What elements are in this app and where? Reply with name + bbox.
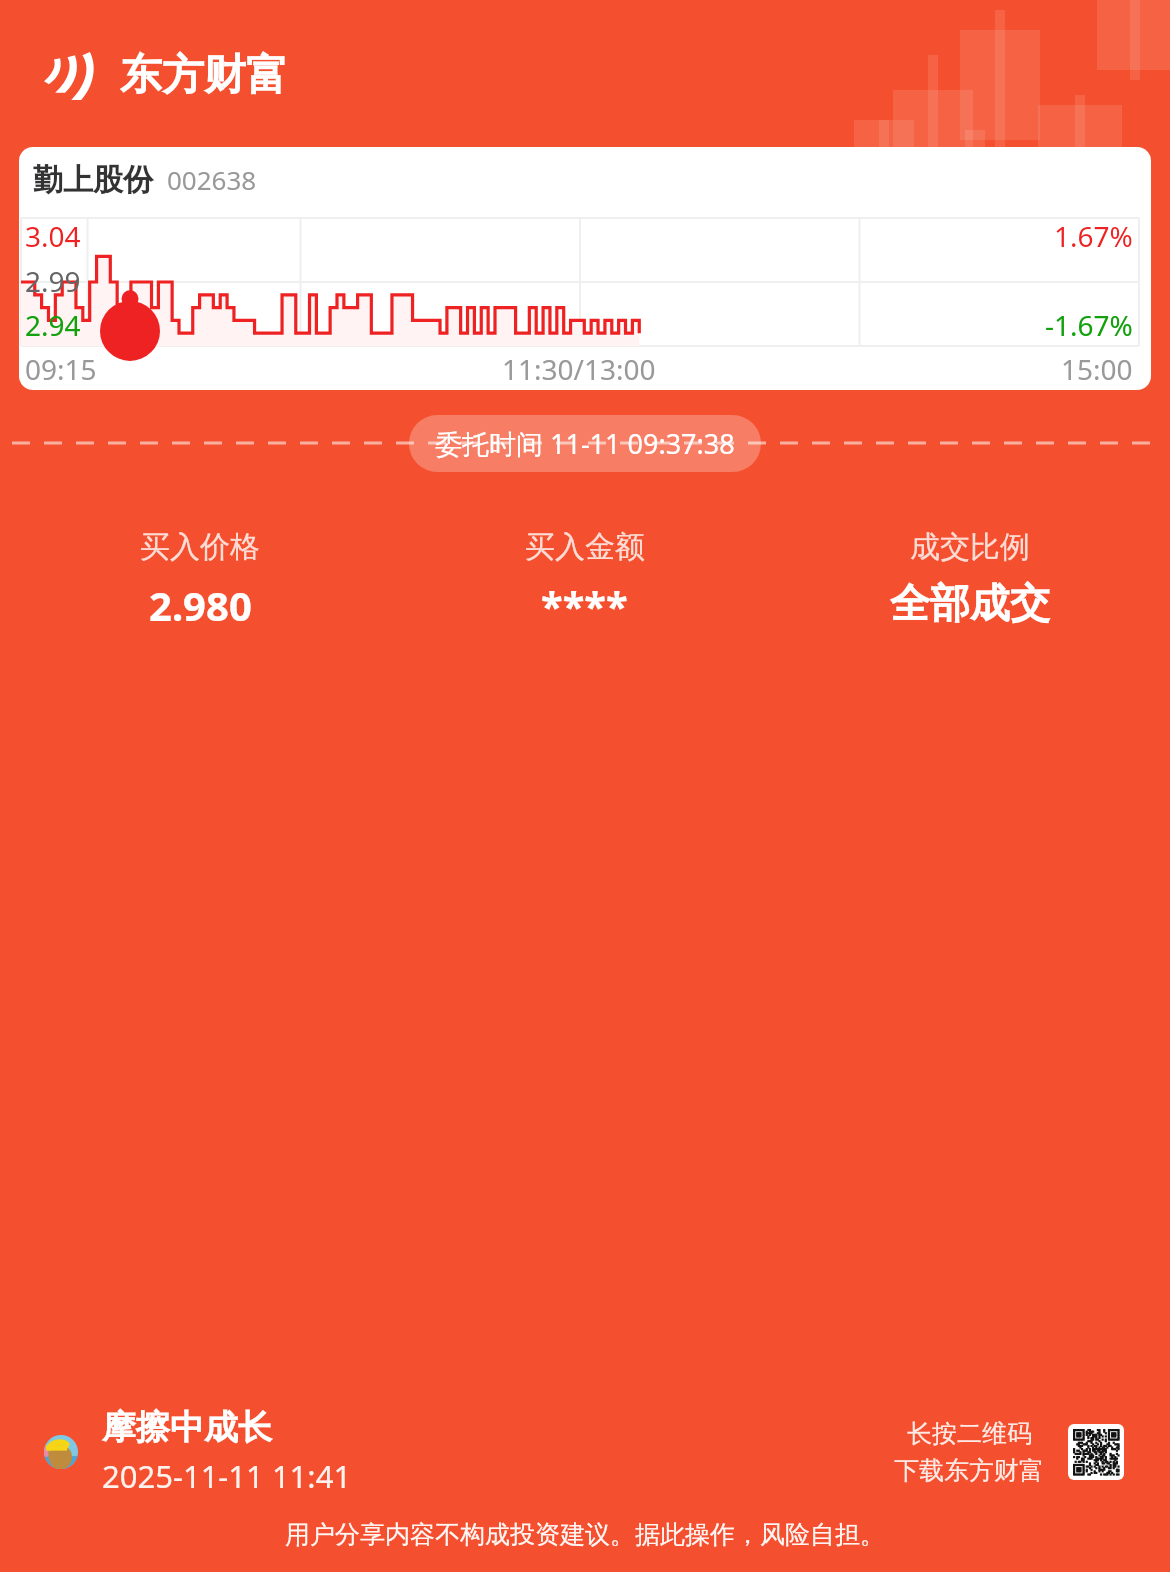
button[interactable]: 买入价格 [8, 528, 392, 632]
staticText: 002638 [167, 162, 257, 197]
staticText: 长按二维码 [907, 1418, 1032, 1449]
staticText: 用户分享内容不构成投资建议。据此操作，风险自担。 [0, 1519, 1170, 1550]
staticText: 成交比例 [910, 528, 1030, 566]
staticText: 09:15 [25, 350, 97, 388]
other: 用户头像 [44, 1435, 78, 1469]
staticText: 3.04 [25, 217, 81, 255]
staticText: 2.980 [149, 578, 252, 632]
staticText: **** [541, 578, 628, 632]
other: 东方财富 [44, 49, 106, 101]
staticText: 摩擦中成长 [102, 1406, 272, 1449]
staticText: 买入金额 [525, 528, 645, 566]
staticText: -1.67% [1045, 306, 1133, 344]
staticText: 2025-11-11 11:41 [102, 1455, 352, 1497]
staticText: 委托时间 11-11 09:37:38 [435, 425, 735, 462]
staticText: 买入价格 [140, 528, 260, 566]
staticText: 全部成交 [890, 578, 1050, 628]
button[interactable]: 成交比例 [777, 528, 1162, 628]
staticText: 15:00 [1061, 350, 1133, 388]
button[interactable]: 勤上股份 [19, 147, 1151, 390]
staticText: 2.94 [25, 306, 81, 344]
staticText: 下载东方财富 [894, 1455, 1044, 1486]
staticText: 勤上股份 [33, 161, 153, 199]
staticText: 1.67% [1054, 217, 1133, 255]
staticText: 2.99 [25, 262, 81, 300]
button[interactable]: 下载二维码 [1068, 1424, 1124, 1480]
staticText: 11:30/13:00 [502, 350, 656, 388]
button[interactable]: 买入金额 [392, 528, 777, 632]
staticText: 东方财富 [120, 49, 288, 102]
